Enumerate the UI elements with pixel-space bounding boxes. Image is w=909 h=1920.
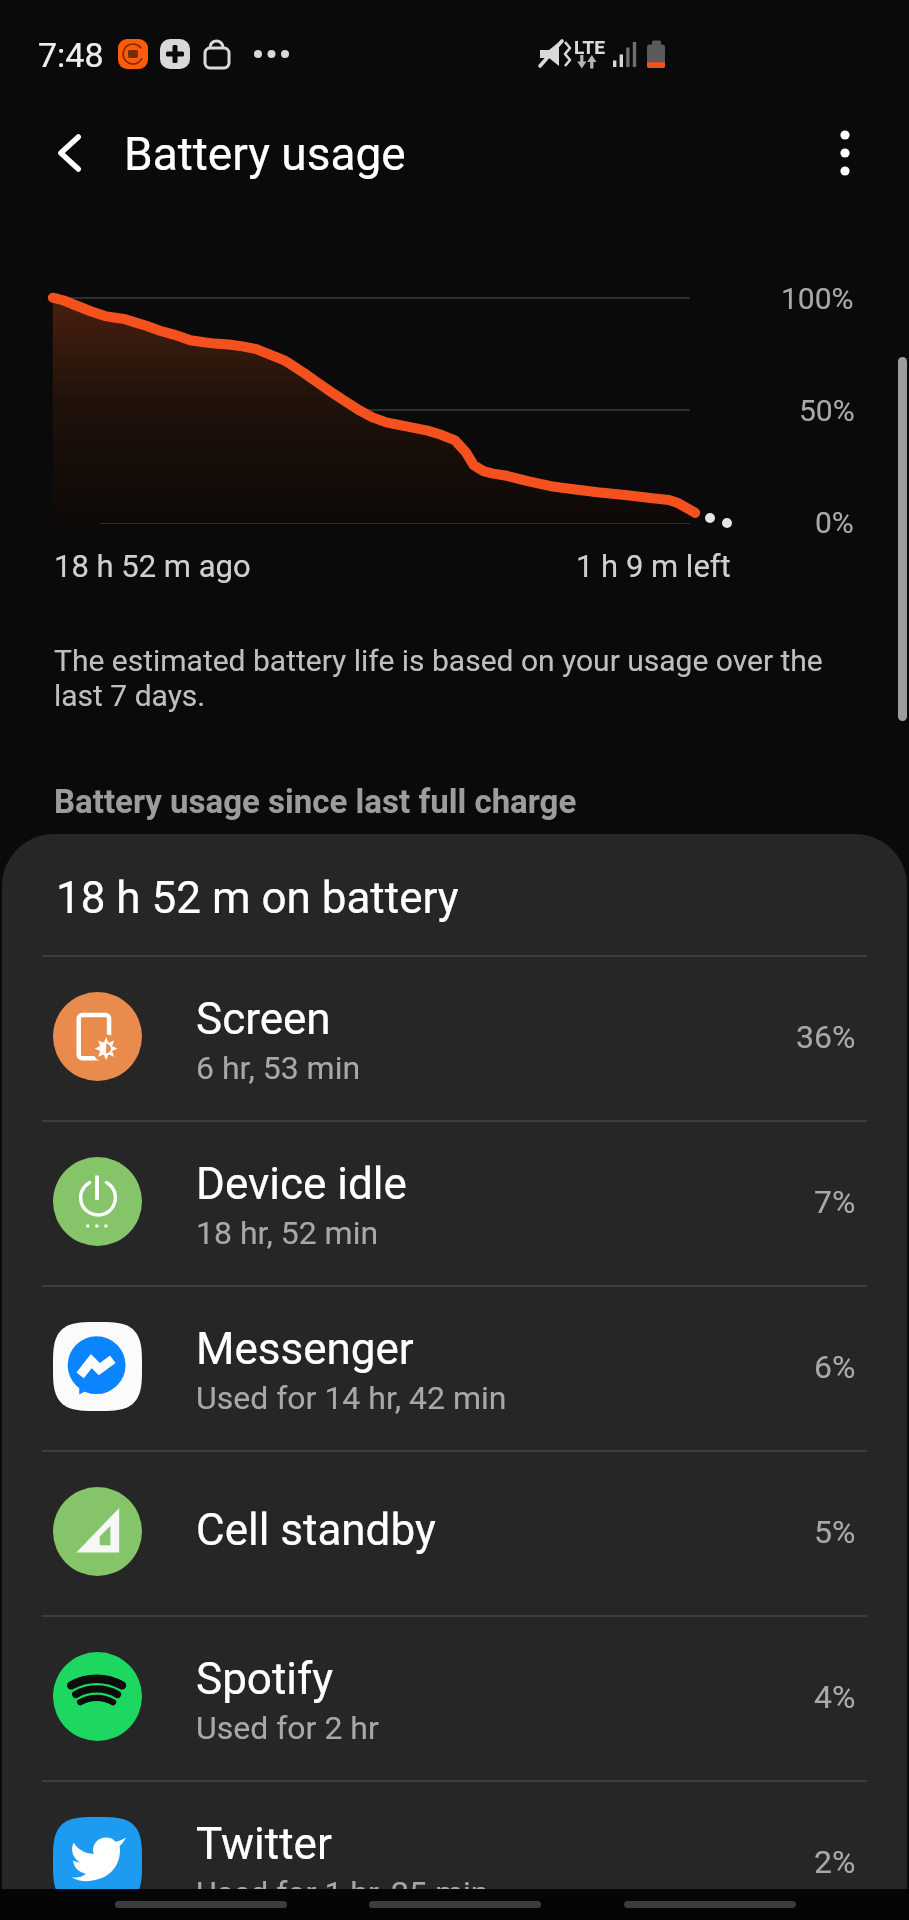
button[interactable]: Spotify bbox=[2, 1614, 907, 1779]
button[interactable]: Screen bbox=[2, 954, 907, 1119]
staticText: Messenger bbox=[196, 1323, 414, 1375]
staticText: Battery usage bbox=[124, 127, 406, 181]
staticText: 6% bbox=[814, 1348, 856, 1386]
staticText: 50% bbox=[799, 393, 855, 428]
staticText: 5% bbox=[814, 1513, 856, 1551]
button[interactable]: More options bbox=[807, 115, 883, 191]
staticText: Twitter bbox=[196, 1818, 332, 1870]
button[interactable]: Navigate up bbox=[32, 115, 108, 191]
staticText: Used for 2 hr bbox=[196, 1709, 379, 1747]
staticText: Cell standby bbox=[196, 1504, 436, 1556]
staticText: Spotify bbox=[196, 1653, 334, 1705]
staticText: LTE bbox=[574, 36, 605, 58]
button[interactable]: Recents bbox=[115, 1889, 287, 1920]
staticText: 6 hr, 53 min bbox=[196, 1049, 361, 1087]
staticText: 18 h 52 m on battery bbox=[56, 872, 459, 924]
staticText: 2% bbox=[814, 1843, 856, 1881]
staticText: 100% bbox=[781, 281, 854, 316]
staticText: Screen bbox=[196, 993, 331, 1045]
staticText: 7% bbox=[814, 1183, 856, 1221]
staticText: 36% bbox=[796, 1018, 856, 1056]
staticText: 7:48 bbox=[38, 35, 104, 75]
staticText: Used for 14 hr, 42 min bbox=[196, 1379, 507, 1417]
staticText: The estimated battery life is based on y… bbox=[54, 643, 823, 678]
button[interactable]: Cell standby bbox=[2, 1449, 907, 1614]
button[interactable]: Twitter bbox=[2, 1779, 907, 1920]
staticText: 4% bbox=[814, 1678, 856, 1716]
button[interactable]: Device idle bbox=[2, 1119, 907, 1284]
staticText: last 7 days. bbox=[54, 678, 206, 713]
staticText: 0% bbox=[815, 505, 854, 540]
staticText: 1 h 9 m left bbox=[576, 548, 731, 584]
staticText: Battery usage since last full charge bbox=[54, 782, 577, 821]
staticText: Device idle bbox=[196, 1158, 407, 1210]
button[interactable]: Home bbox=[369, 1889, 541, 1920]
staticText: Used for 1 hr, 25 min bbox=[196, 1874, 489, 1912]
staticText: 18 h 52 m ago bbox=[54, 548, 251, 584]
staticText: 18 hr, 52 min bbox=[196, 1214, 379, 1252]
button[interactable]: Back bbox=[624, 1889, 796, 1920]
button[interactable]: Messenger bbox=[2, 1284, 907, 1449]
